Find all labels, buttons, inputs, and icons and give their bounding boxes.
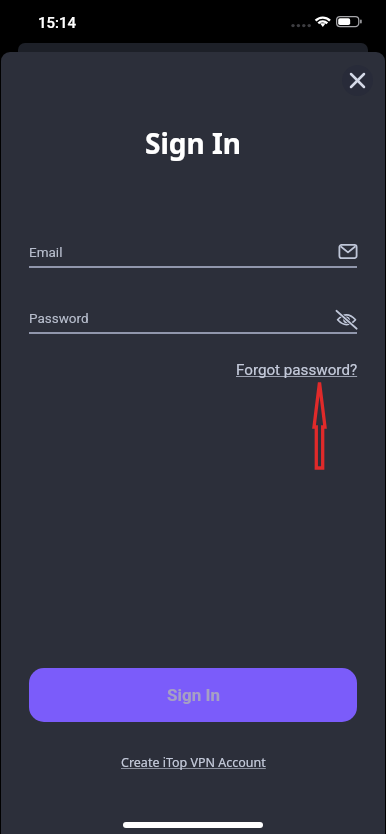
staticText: Sign In <box>167 685 220 705</box>
button[interactable]: Close <box>342 65 373 96</box>
staticText: Sign In <box>145 124 242 162</box>
staticText: Create iTop VPN Account <box>121 754 266 771</box>
button[interactable]: Show password <box>336 306 360 330</box>
staticText: Forgot password? <box>236 361 358 379</box>
button[interactable]: Forgot password? <box>232 358 362 382</box>
button[interactable]: Sign In <box>29 668 357 722</box>
staticText: Email <box>29 244 63 260</box>
button[interactable]: Email <box>336 240 360 264</box>
button[interactable]: Create iTop VPN Account <box>115 750 272 775</box>
staticText: 15:14 <box>38 14 77 32</box>
staticText: Password <box>29 310 89 326</box>
